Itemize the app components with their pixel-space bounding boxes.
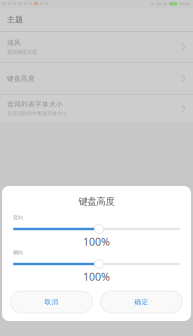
- staticText: 取消: [44, 298, 58, 306]
- button[interactable]: 选词列表字体大小: [0, 95, 193, 122]
- button[interactable]: 清风: [0, 32, 193, 62]
- staticText: 键盘高度: [78, 196, 114, 207]
- staticText: 100%: [83, 234, 110, 249]
- staticText: 主题: [7, 15, 23, 24]
- button[interactable]: 键盘高度: [0, 63, 193, 94]
- staticText: 清风: [7, 39, 21, 47]
- staticText: 确定: [134, 298, 148, 306]
- staticText: 竖向: [13, 214, 23, 221]
- button[interactable]: 确定: [100, 291, 182, 313]
- staticText: 在选词列表中更改字体大小: [7, 110, 67, 117]
- staticText: 更改键盘主题: [7, 49, 37, 55]
- staticText: 100%: [83, 269, 110, 284]
- staticText: 选词列表字体大小: [7, 100, 63, 108]
- button[interactable]: 取消: [10, 291, 92, 313]
- staticText: 横向: [13, 249, 23, 256]
- staticText: 键盘高度: [7, 74, 35, 83]
